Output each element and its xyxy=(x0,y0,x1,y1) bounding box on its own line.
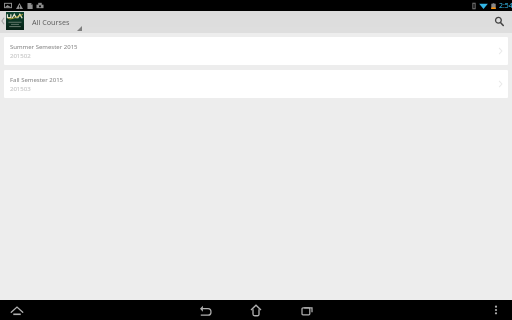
staticText: 2:54 xyxy=(499,1,512,10)
button[interactable]: Recent apps xyxy=(289,300,325,320)
button[interactable]: Home xyxy=(238,300,274,320)
staticText: All Courses xyxy=(32,17,70,27)
button[interactable]: More options xyxy=(489,300,503,320)
staticText: Summer Semester 2015 xyxy=(10,43,78,51)
button[interactable]: Navigate up xyxy=(0,10,24,32)
staticText: 201503 xyxy=(10,85,31,93)
button[interactable]: Hide navigation bar xyxy=(8,300,26,320)
staticText: 201502 xyxy=(10,52,31,60)
button[interactable]: Back xyxy=(188,300,224,320)
button[interactable]: Fall Semester 2015 xyxy=(4,70,508,98)
button[interactable]: Search xyxy=(486,11,512,33)
button[interactable]: Summer Semester 2015 xyxy=(4,37,508,65)
staticText: Fall Semester 2015 xyxy=(10,76,63,84)
